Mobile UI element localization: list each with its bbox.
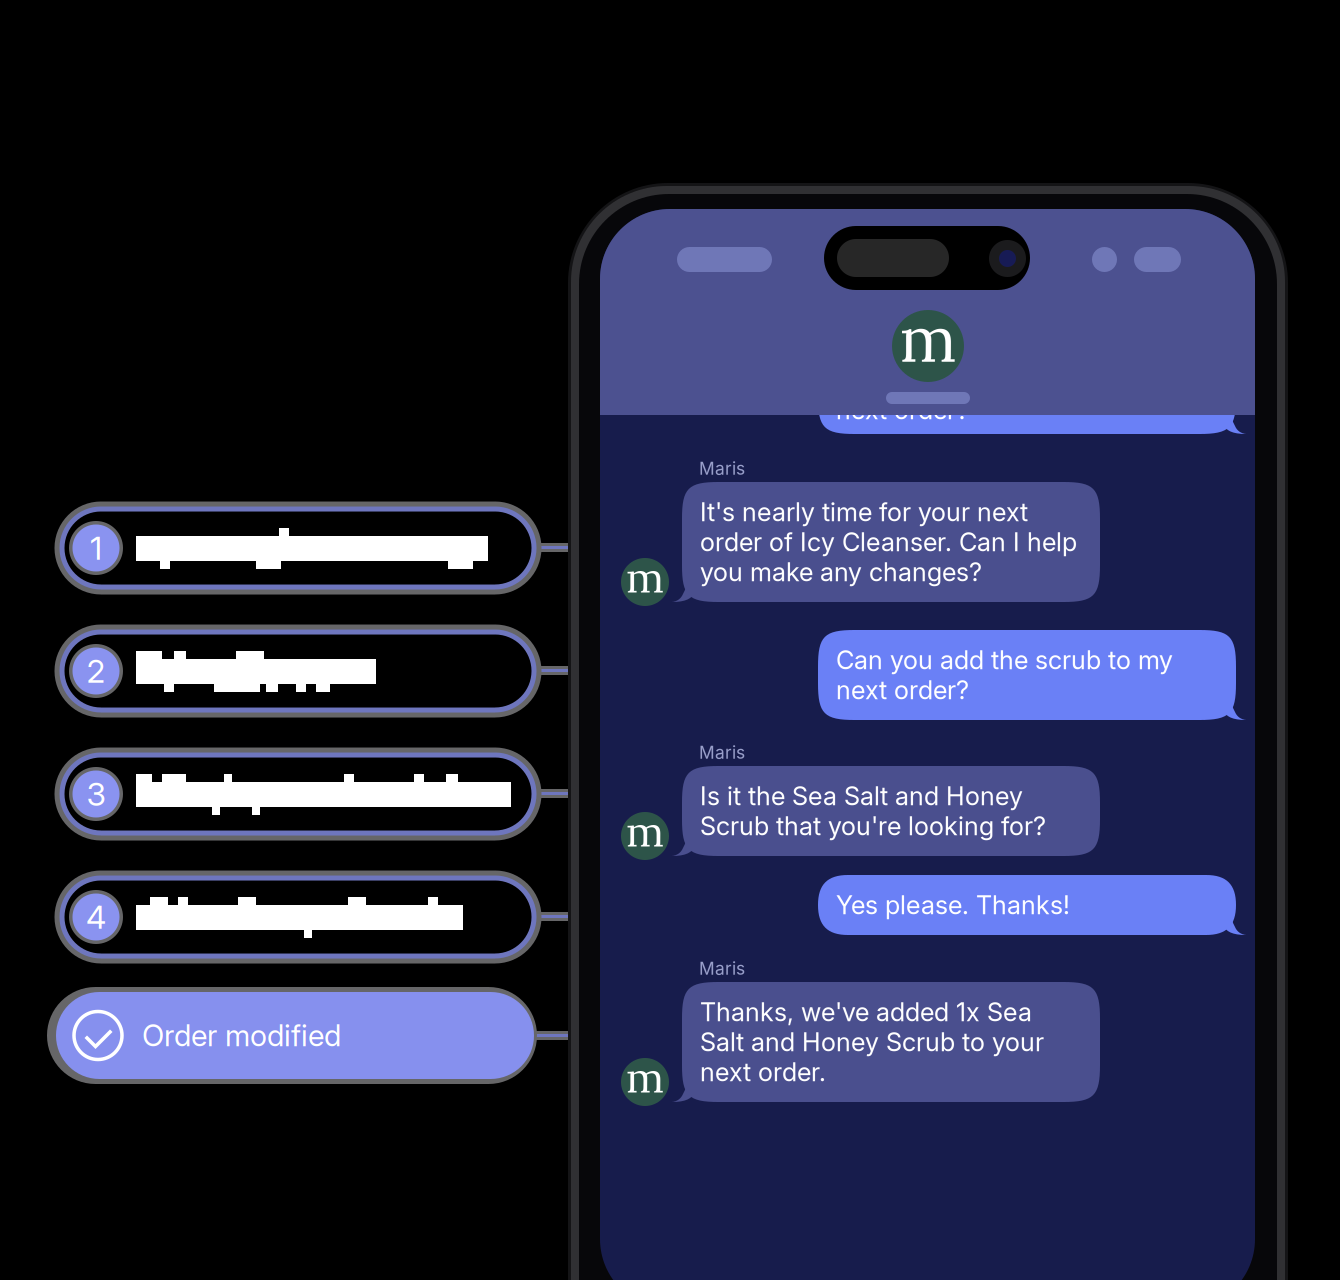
staticText: next order? — [836, 395, 969, 425]
staticText: It's nearly time for your next — [700, 497, 1028, 527]
staticText: Maris — [699, 958, 745, 979]
staticText: Scrub that you're looking for? — [700, 811, 1046, 841]
staticText: you make any changes? — [700, 557, 982, 587]
staticText: m — [899, 297, 956, 379]
staticText: Salt and Honey Scrub to your — [700, 1027, 1044, 1057]
staticText: m — [626, 1050, 664, 1104]
staticText: 1 — [90, 529, 102, 567]
staticText: 2 — [86, 652, 105, 690]
staticText: m — [626, 550, 664, 604]
staticText: 4 — [86, 898, 106, 936]
staticText: Can you add the scrub to my — [836, 645, 1173, 675]
button[interactable]: 1 — [62, 509, 534, 587]
staticText: Thanks, we've added 1x Sea — [700, 997, 1032, 1027]
staticText: m — [626, 804, 664, 858]
staticText: Can you add the scrub to your — [836, 365, 1190, 395]
button[interactable]: Order modified — [56, 992, 534, 1079]
button[interactable]: 4 — [62, 878, 534, 956]
staticText: order of Icy Cleanser. Can I help — [700, 527, 1077, 557]
staticText: Maris — [699, 742, 745, 763]
staticText: next order. — [700, 1057, 826, 1087]
staticText: 3 — [86, 775, 105, 813]
button[interactable]: Maris — [858, 310, 998, 404]
staticText: Order modified — [142, 1018, 341, 1053]
staticText: next order? — [836, 675, 969, 705]
button[interactable]: 3 — [62, 755, 534, 833]
button[interactable]: 2 — [62, 632, 534, 710]
staticText: Yes please. Thanks! — [836, 890, 1070, 920]
staticText: Is it the Sea Salt and Honey — [700, 781, 1023, 811]
staticText: Maris — [699, 458, 745, 479]
